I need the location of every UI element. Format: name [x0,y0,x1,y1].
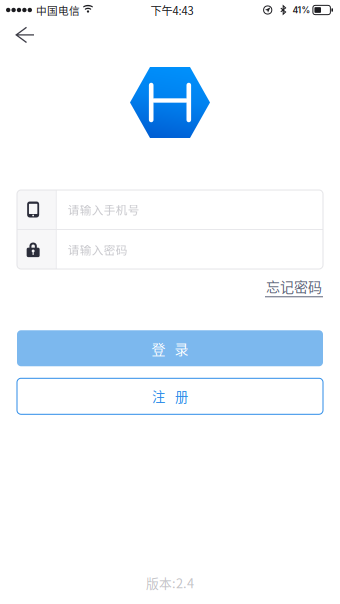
staticText: 忘记密码 [266,276,322,296]
button[interactable]: Back [6,20,44,49]
staticText: 版本:2.4 [146,573,194,592]
staticText: 登 [151,338,165,358]
staticText: 中国电信 [36,2,80,18]
staticText: 41% [292,5,310,15]
staticText: 请输入密码 [68,241,128,258]
button[interactable]: 注 [17,378,323,414]
staticText: 册 [175,387,188,406]
staticText: 请输入手机号 [68,201,140,218]
staticText: 录 [174,338,188,358]
button[interactable]: 忘记密码 [265,276,323,297]
staticText: 注 [152,387,165,406]
staticText: 下午4:43 [150,2,193,18]
button[interactable]: 登 [17,330,323,366]
